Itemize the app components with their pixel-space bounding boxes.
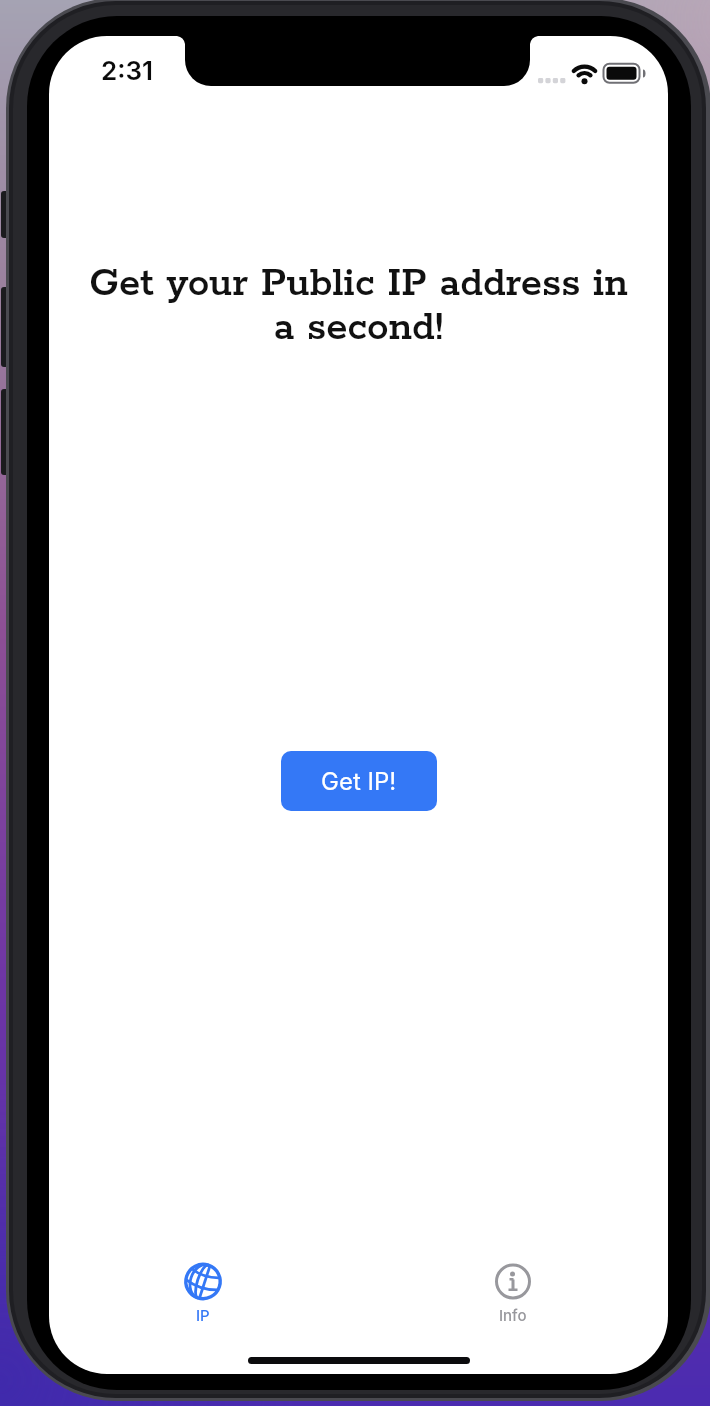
staticText: Get your Public IP address in: [49, 260, 668, 309]
staticText: Get IP!: [321, 767, 397, 796]
staticText: Info: [499, 1306, 527, 1324]
button[interactable]: Get IP!: [281, 751, 437, 811]
staticText: 2:31: [101, 55, 154, 86]
staticText: IP: [196, 1306, 210, 1324]
button[interactable]: Info: [463, 1254, 563, 1332]
staticText: a second!: [49, 304, 668, 353]
button[interactable]: IP: [153, 1254, 253, 1332]
